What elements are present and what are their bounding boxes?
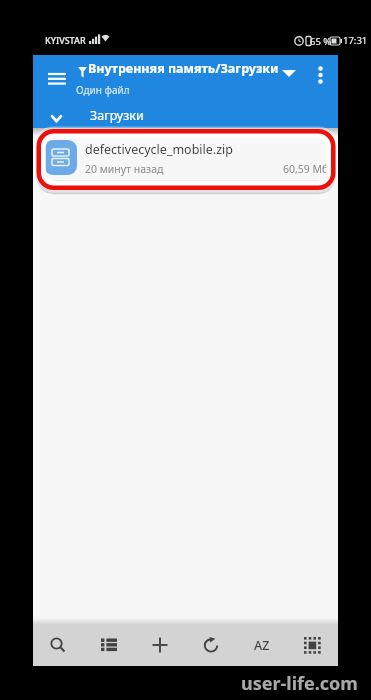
button[interactable]: [185, 624, 236, 666]
staticText: 20 минут назад: [85, 162, 164, 176]
staticText: user-life.com: [241, 671, 358, 696]
button[interactable]: [306, 56, 334, 94]
staticText: KYIVSTAR: [45, 34, 86, 46]
staticText: Один файл: [76, 83, 130, 97]
button[interactable]: [287, 624, 338, 666]
staticText: defectivecycle_mobile.zip: [85, 141, 234, 158]
button[interactable]: defectivecycle_mobile.zip: [33, 128, 338, 185]
button[interactable]: Внутренняя память/Загрузки: [77, 55, 299, 97]
staticText: 65 %: [310, 35, 332, 48]
button[interactable]: [134, 624, 185, 666]
button[interactable]: [83, 624, 134, 666]
staticText: 60,59 Мб: [283, 162, 329, 176]
button[interactable]: [33, 624, 83, 666]
button[interactable]: Загрузки: [33, 103, 338, 128]
staticText: AZ: [254, 637, 270, 654]
staticText: Загрузки: [90, 107, 144, 124]
staticText: Внутренняя память/Загрузки: [88, 60, 279, 77]
staticText: 17:31: [343, 34, 368, 47]
button[interactable]: AZ: [236, 624, 287, 666]
button[interactable]: [39, 61, 75, 97]
